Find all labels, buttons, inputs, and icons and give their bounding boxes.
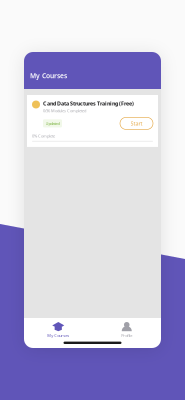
staticText: Updated	[45, 121, 59, 126]
button[interactable]: Profile	[92, 322, 161, 338]
button[interactable]: Start	[120, 117, 153, 129]
staticText: 0/36 Modules Completed	[43, 108, 86, 113]
staticText: 0% Complete	[32, 133, 55, 139]
staticText: My Courses	[47, 333, 69, 338]
staticText: Profile	[121, 333, 132, 338]
staticText: Start	[130, 120, 142, 127]
button[interactable]: My Courses	[24, 322, 92, 338]
staticText: C and Data Structures Training (Free)	[43, 100, 134, 107]
staticText: My Courses	[30, 71, 67, 80]
